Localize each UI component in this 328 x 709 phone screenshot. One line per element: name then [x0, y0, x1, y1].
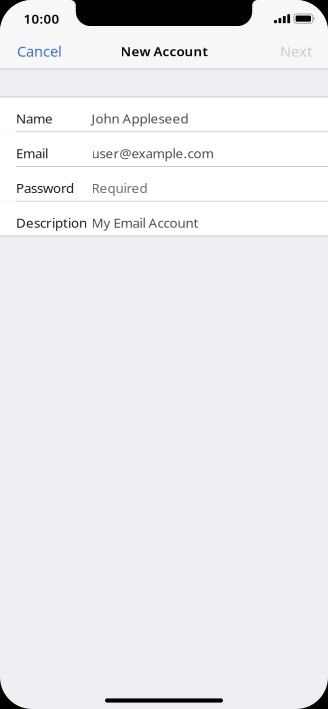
staticText: Email	[16, 144, 48, 162]
button[interactable]: Password	[0, 167, 328, 201]
staticText: My Email Account	[91, 214, 198, 231]
staticText: John Appleseed	[91, 109, 188, 127]
staticText: Name	[16, 109, 53, 127]
staticText: Description	[16, 214, 87, 231]
button[interactable]: Description	[0, 202, 328, 236]
button[interactable]: Next	[264, 32, 328, 70]
staticText: Cancel	[17, 41, 62, 61]
button[interactable]: Cancel	[0, 32, 79, 70]
staticText: Next	[280, 41, 312, 61]
staticText: Required	[91, 179, 147, 197]
button[interactable]: Name	[0, 97, 328, 131]
staticText: Password	[16, 179, 74, 197]
button[interactable]: Email	[0, 132, 328, 166]
staticText: 10:00	[23, 10, 59, 27]
staticText: user@example.com	[91, 144, 213, 162]
staticText: New Account	[120, 42, 207, 60]
